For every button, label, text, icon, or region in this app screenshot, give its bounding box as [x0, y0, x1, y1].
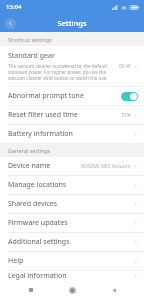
staticText: General settings: [8, 147, 51, 154]
staticText: Firmware updates: [8, 218, 133, 228]
staticText: Settings: [57, 18, 87, 28]
button[interactable]: Reset filter used time: [0, 106, 144, 124]
button[interactable]: Legal information: [0, 271, 144, 280]
staticText: 60 W: [119, 63, 131, 70]
staticText: Shared devices: [8, 199, 133, 209]
button[interactable]: Firmware updates: [0, 214, 144, 232]
staticText: Additional settings: [8, 237, 133, 247]
staticText: Reset filter used time: [8, 110, 121, 120]
button[interactable]: Shared devices: [0, 195, 144, 213]
button[interactable]: Additional settings: [0, 233, 144, 251]
staticText: 15:04: [6, 3, 22, 11]
staticText: Legal information: [8, 271, 133, 280]
button[interactable]: Abnormal prompt tone: [0, 87, 144, 105]
staticText: Manage locations: [8, 180, 133, 190]
button[interactable]: Back: [5, 18, 16, 29]
button[interactable]: Back: [103, 280, 125, 300]
button[interactable]: Help: [0, 252, 144, 270]
staticText: Standard gear: [8, 51, 55, 61]
staticText: ROIDMI NEX Vacuum: [81, 163, 131, 170]
staticText: Abnormal prompt tone: [8, 91, 121, 101]
button[interactable]: Standard gear: [0, 46, 144, 86]
button[interactable]: Battery information: [0, 125, 144, 143]
button[interactable]: Recents: [20, 280, 42, 300]
button[interactable]: Device name: [0, 157, 144, 175]
staticText: 72%: [121, 112, 131, 119]
button[interactable]: Home: [61, 280, 83, 300]
staticText: Device name: [8, 161, 81, 171]
button[interactable]: Manage locations: [0, 176, 144, 194]
staticText: The vacuum cleaner is powered by the def…: [8, 63, 115, 81]
staticText: Shortcut settings: [8, 36, 53, 43]
staticText: Help: [8, 256, 133, 266]
staticText: Battery information: [8, 129, 133, 139]
